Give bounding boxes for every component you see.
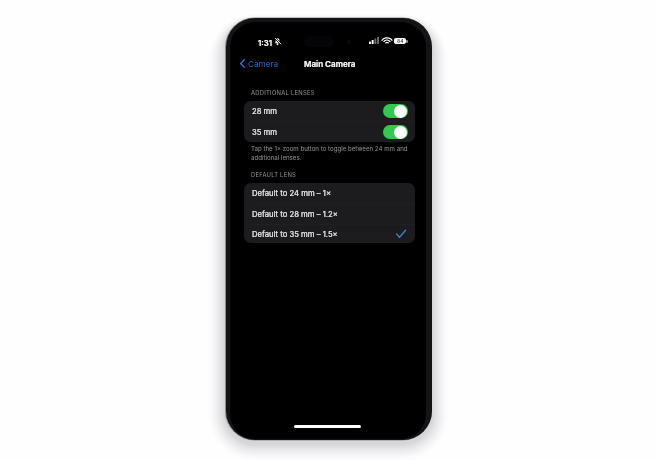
staticText: 84 bbox=[397, 38, 404, 44]
button[interactable]: Enable 35 mm lens bbox=[383, 125, 408, 139]
staticText: Default to 35 mm – 1.5× bbox=[252, 230, 338, 239]
staticText: Default to 24 mm – 1× bbox=[252, 189, 332, 198]
button[interactable]: 35 mm bbox=[244, 122, 415, 142]
button[interactable]: Camera bbox=[238, 55, 281, 72]
staticText: Default to 28 mm – 1.2× bbox=[252, 210, 338, 219]
button[interactable]: Default to 24 mm – 1× bbox=[244, 183, 415, 203]
button[interactable]: 28 mm bbox=[244, 101, 415, 121]
button[interactable]: Default to 28 mm – 1.2× bbox=[244, 204, 415, 224]
staticText: ADDITIONAL LENSES bbox=[251, 89, 315, 96]
staticText: 35 mm bbox=[252, 128, 278, 137]
staticText: Tap the 1× zoom button to toggle between… bbox=[251, 145, 408, 161]
button[interactable]: Enable 28 mm lens bbox=[383, 104, 408, 118]
other: Cellular signal bbox=[369, 37, 379, 44]
other: Wi-Fi bbox=[383, 37, 391, 44]
staticText: 28 mm bbox=[252, 107, 278, 116]
staticText: 1:31 bbox=[258, 38, 273, 47]
button[interactable]: Default to 35 mm – 1.5× bbox=[244, 225, 415, 243]
staticText: DEFAULT LENS bbox=[251, 171, 297, 178]
staticText: Camera bbox=[248, 59, 279, 69]
other: Silent mode bbox=[274, 38, 281, 45]
other: Selected bbox=[396, 229, 406, 239]
staticText: Main Camera bbox=[304, 59, 356, 69]
